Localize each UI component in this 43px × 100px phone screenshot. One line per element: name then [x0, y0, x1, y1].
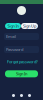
staticText: Sign In [16, 71, 27, 76]
button[interactable]: Sign In [5, 70, 38, 77]
staticText: Password [6, 47, 23, 52]
button[interactable]: Sign Up [21, 23, 38, 29]
staticText: Email [6, 34, 16, 39]
staticText: Sign Up [23, 23, 36, 29]
button[interactable]: Sign In [5, 23, 21, 29]
staticText: Forgot password? [7, 59, 38, 64]
button[interactable]: Forgot password? [5, 59, 38, 64]
staticText: Sign In [7, 23, 18, 29]
